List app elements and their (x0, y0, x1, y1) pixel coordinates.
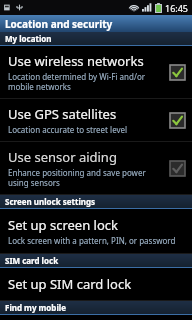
staticText: Use GPS satellites (8, 105, 117, 123)
staticText: My location (5, 33, 52, 44)
staticText: Find my mobile (5, 302, 66, 313)
button[interactable]: Toggle setting (169, 64, 186, 81)
button[interactable]: Toggle setting (169, 112, 186, 129)
staticText: Use wireless networks (8, 52, 144, 70)
staticText: Location and security (5, 17, 113, 31)
staticText: SIM card lock (5, 255, 59, 266)
button[interactable]: Toggle setting (169, 160, 186, 177)
staticText: Use sensor aiding (8, 148, 117, 166)
staticText: Set up screen lock (8, 216, 119, 234)
staticText: Location accurate to street level (8, 124, 128, 135)
staticText: 16:45 (165, 2, 189, 14)
button[interactable]: Set up screen lock (0, 209, 192, 253)
staticText: Enhance positioning and save power using… (8, 167, 146, 188)
button[interactable]: Use wireless networks (0, 46, 192, 98)
staticText: Screen unlock settings (5, 196, 96, 207)
button[interactable]: Use GPS satellites (0, 99, 192, 141)
staticText: Lock screen with a pattern, PIN, or pass… (8, 235, 176, 246)
staticText: Set up SIM card lock (8, 275, 132, 293)
button[interactable]: Set up SIM card lock (0, 268, 192, 300)
staticText: Location determined by Wi-Fi and/or mobi… (8, 71, 146, 92)
button[interactable]: Use sensor aiding (0, 142, 192, 194)
